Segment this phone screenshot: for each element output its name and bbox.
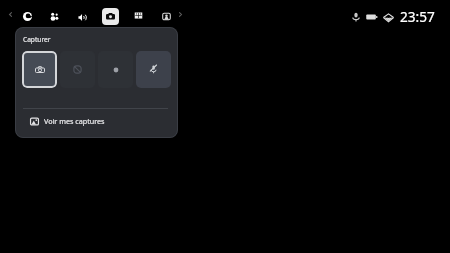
button[interactable]: Media player (156, 7, 176, 26)
button[interactable]: Photos (128, 6, 148, 25)
button[interactable]: Volume (72, 8, 92, 27)
button[interactable]: Voir mes captures (15, 105, 178, 137)
button[interactable]: Previous (5, 9, 16, 20)
button[interactable]: Screenshot (22, 51, 57, 88)
button[interactable]: Microphone off (136, 51, 171, 88)
staticText: 23:57 (400, 7, 435, 26)
button[interactable]: Microsoft Edge (17, 7, 37, 26)
button[interactable]: Wi-Fi (381, 10, 395, 24)
button[interactable]: 23:57 (400, 7, 435, 26)
button[interactable]: Next (175, 9, 186, 20)
button[interactable]: Screen record (60, 51, 95, 88)
staticText: Capturer (23, 35, 51, 44)
button[interactable]: Microphone (349, 10, 363, 24)
button[interactable]: Teams (44, 7, 64, 26)
button[interactable]: Battery (365, 10, 379, 24)
staticText: Voir mes captures (44, 116, 105, 126)
button[interactable]: Start recording (98, 51, 133, 88)
button[interactable]: Capture (102, 8, 119, 25)
